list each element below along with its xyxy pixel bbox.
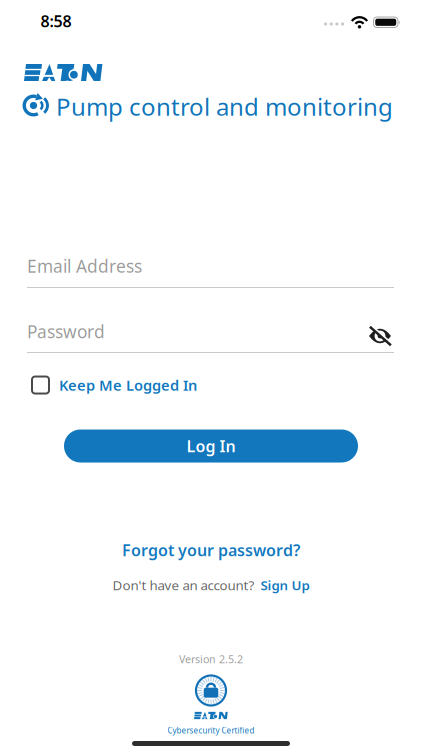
staticText: Sign Up bbox=[260, 576, 309, 594]
staticText: Version 2.5.2 bbox=[179, 652, 243, 666]
staticText: Log In bbox=[186, 435, 235, 457]
button[interactable]: Show password bbox=[368, 327, 391, 345]
staticText: Keep Me Logged In bbox=[59, 375, 197, 395]
staticText: Forgot your password? bbox=[122, 539, 300, 561]
staticText: Pump control and monitoring bbox=[56, 91, 393, 122]
button[interactable]: Forgot your password? bbox=[122, 539, 300, 561]
staticText: Don't have an account? bbox=[112, 576, 254, 594]
staticText: 8:58 bbox=[40, 10, 71, 32]
staticText: Cybersecurity Certified bbox=[167, 725, 254, 736]
button[interactable]: Sign Up bbox=[260, 576, 309, 594]
staticText: Email Address bbox=[27, 254, 142, 277]
button[interactable]: Keep Me Logged In bbox=[32, 375, 197, 395]
button[interactable]: Log In bbox=[64, 429, 358, 462]
staticText: Password bbox=[27, 320, 105, 343]
